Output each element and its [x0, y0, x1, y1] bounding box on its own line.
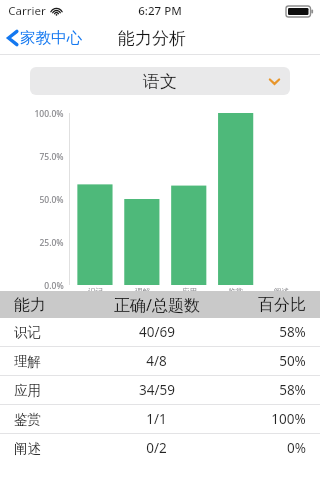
staticText: 100% — [271, 410, 306, 428]
staticText: 58% — [279, 323, 306, 341]
staticText: Carrier — [8, 3, 46, 19]
staticText: 阐述 — [14, 440, 41, 457]
staticText: 0/2 — [146, 439, 167, 457]
staticText: 58% — [279, 381, 306, 399]
staticText: 50% — [279, 352, 306, 370]
staticText: 应用 — [182, 287, 197, 296]
button[interactable]: 鉴赏 — [0, 405, 320, 433]
staticText: 理解 — [14, 353, 41, 370]
staticText: 识记 — [88, 287, 103, 296]
button[interactable]: 阐述 — [0, 434, 320, 462]
staticText: 0% — [287, 439, 306, 457]
staticText: 0.0% — [44, 280, 64, 292]
staticText: 识记 — [14, 324, 41, 341]
staticText: 理解 — [135, 287, 150, 296]
staticText: 鉴赏 — [14, 411, 41, 428]
button[interactable]: 理解 — [0, 347, 320, 375]
staticText: 能力分析 — [118, 28, 186, 49]
staticText: 正确/总题数 — [114, 294, 200, 316]
other: Select subject — [269, 78, 280, 85]
staticText: 家教中心 — [20, 28, 82, 48]
staticText: 1/1 — [146, 410, 167, 428]
button[interactable]: 语文 — [30, 67, 290, 95]
staticText: 100.0% — [34, 108, 64, 120]
staticText: 应用 — [14, 382, 41, 399]
button[interactable]: 识记 — [0, 318, 320, 346]
staticText: 语文 — [143, 71, 177, 92]
button[interactable]: 家教中心 — [0, 24, 90, 52]
staticText: 6:27 PM — [138, 3, 182, 19]
staticText: 40/69 — [139, 323, 175, 341]
button[interactable]: 应用 — [0, 376, 320, 404]
staticText: 25.0% — [39, 237, 64, 249]
staticText: 阐述 — [274, 287, 289, 296]
staticText: 50.0% — [39, 194, 64, 206]
staticText: 能力 — [14, 295, 46, 315]
staticText: 百分比 — [258, 295, 306, 315]
staticText: 75.0% — [39, 151, 64, 163]
staticText: 4/8 — [146, 352, 167, 370]
staticText: 34/59 — [139, 381, 175, 399]
staticText: 鉴赏 — [228, 287, 243, 296]
